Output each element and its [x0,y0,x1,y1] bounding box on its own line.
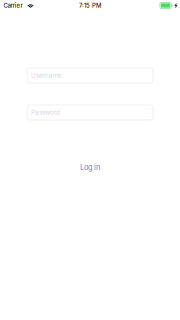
button[interactable]: Log in [70,160,110,175]
button[interactable]: Username [27,68,153,83]
staticText: Log in [80,163,100,172]
button[interactable]: Password [27,105,153,120]
staticText: Username [31,72,62,79]
staticText: Password [31,109,60,116]
staticText: 7:15 PM [79,2,101,9]
staticText: Carrier [3,2,22,9]
